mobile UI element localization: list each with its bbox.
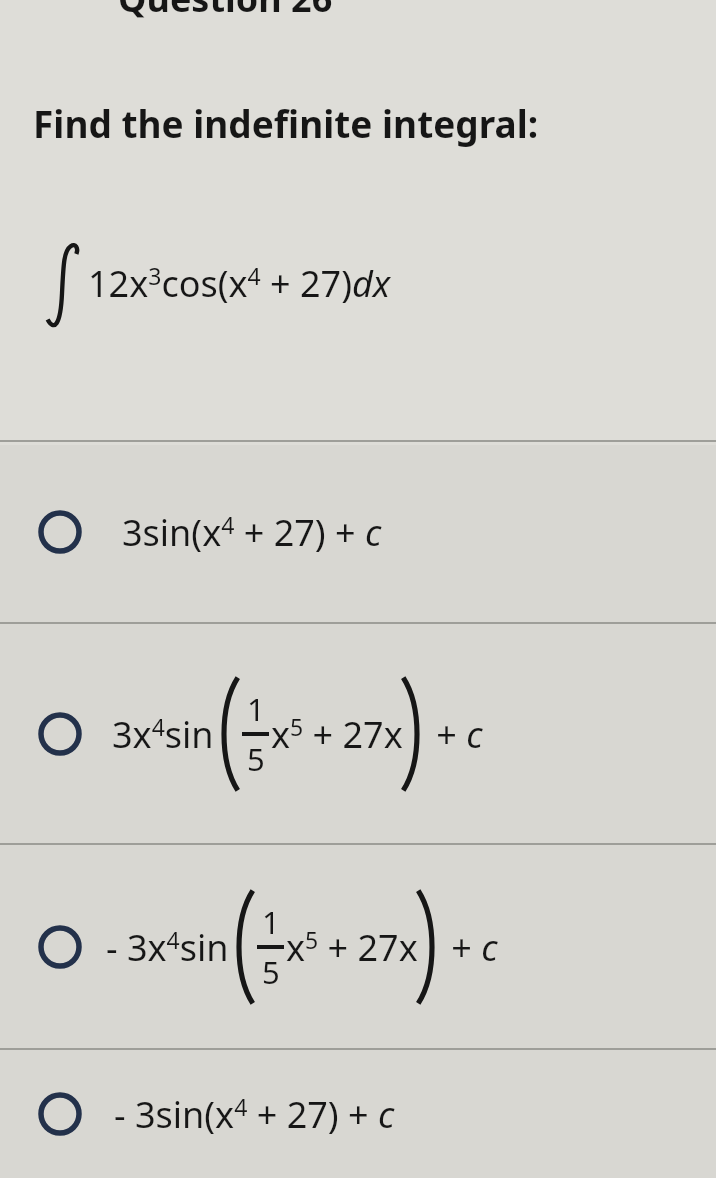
staticText: 3x4sin (112, 710, 214, 759)
staticText: 5 (262, 951, 280, 993)
button[interactable]: - 3sin(x4 + 27) + c (0, 1050, 716, 1178)
staticText: Find the indefinite integral: (33, 98, 539, 148)
button[interactable]: - 3x4sin (0, 845, 716, 1048)
staticText: 12x3cos(x4 + 27)dx (88, 259, 391, 308)
staticText: - 3sin(x4 + 27) + c (114, 1090, 395, 1139)
staticText: 3sin(x4 + 27) + c (122, 508, 382, 557)
staticText: + c (442, 923, 498, 972)
button[interactable]: 3sin(x4 + 27) + c (0, 442, 716, 622)
staticText: 5 (247, 738, 265, 780)
staticText: 1 (247, 688, 265, 730)
staticText: x5 + 27x (286, 923, 418, 972)
staticText: Question 26 (118, 0, 333, 23)
staticText: x5 + 27x (271, 710, 403, 759)
staticText: + c (427, 710, 483, 759)
staticText: 1 (262, 901, 280, 943)
staticText: - 3x4sin (106, 923, 229, 972)
button[interactable]: 3x4sin (0, 624, 716, 843)
